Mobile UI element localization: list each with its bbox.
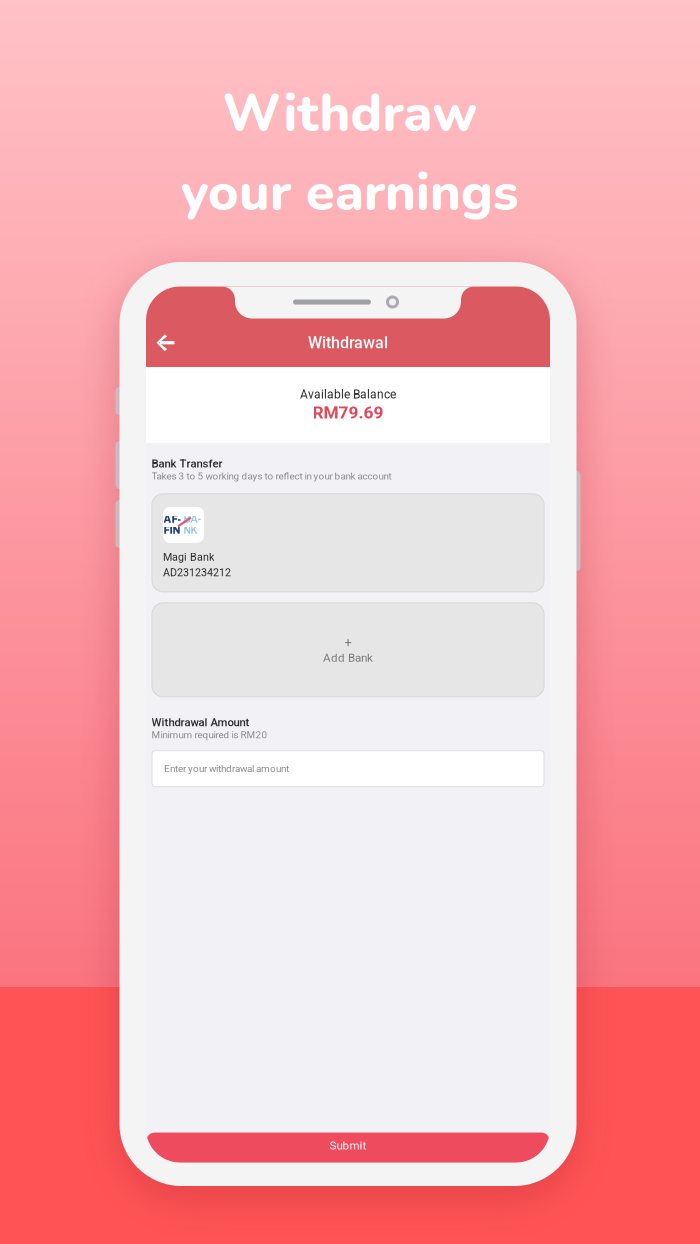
staticText: Bank Transfer (151, 457, 222, 470)
button[interactable]: Back (144, 321, 188, 365)
staticText: BANK (183, 514, 203, 536)
staticText: AD231234212 (163, 566, 231, 579)
staticText: + (344, 635, 351, 650)
staticText: Minimum required is RM20 (151, 729, 267, 741)
staticText: Enter your withdrawal amount (164, 763, 289, 774)
button[interactable]: Submit (146, 1132, 550, 1162)
staticText: Withdrawal Amount (151, 716, 249, 729)
staticText: Magi Bank (163, 551, 214, 563)
staticText: AFFIN (163, 514, 183, 536)
staticText: Add Bank (323, 651, 373, 665)
button[interactable]: AFFIN (152, 494, 544, 592)
staticText: Submit (329, 1139, 366, 1152)
staticText: Withdraw (222, 78, 477, 149)
staticText: your earnings (181, 157, 519, 228)
staticText: RM79.69 (312, 402, 383, 423)
button[interactable]: + (152, 603, 544, 697)
staticText: Takes 3 to 5 working days to reflect in … (151, 470, 391, 482)
staticText: Available Balance (300, 387, 396, 401)
button[interactable]: Enter your withdrawal amount (152, 751, 544, 787)
staticText: Withdrawal (308, 333, 388, 352)
